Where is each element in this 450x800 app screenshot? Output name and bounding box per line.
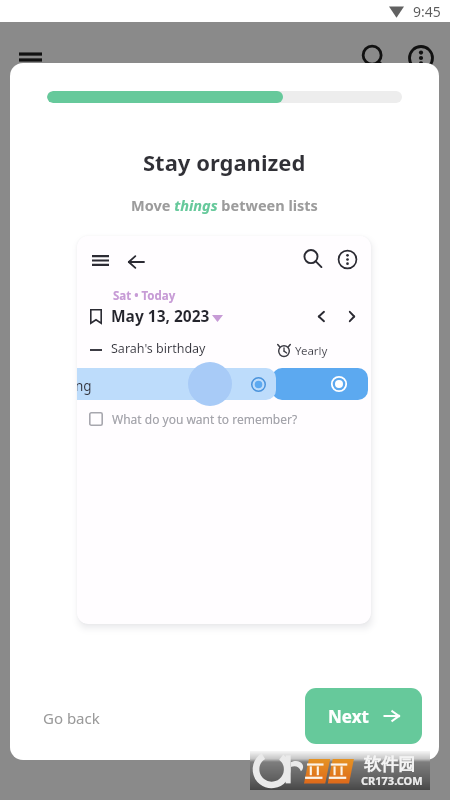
staticText: Go back xyxy=(43,708,100,728)
button[interactable]: More options xyxy=(331,243,363,275)
button[interactable]: Search xyxy=(360,43,390,73)
staticText: Next xyxy=(328,705,369,728)
staticText: 9:45 xyxy=(413,2,441,21)
staticText: Sat • Today xyxy=(113,288,176,304)
button[interactable]: Menu xyxy=(15,43,45,73)
button[interactable]: Next xyxy=(305,688,422,744)
button[interactable]: Menu xyxy=(84,244,116,276)
staticText: Stay organized xyxy=(143,147,306,177)
staticText: Yearly xyxy=(295,343,328,359)
button[interactable]: What do you want to remember? xyxy=(77,406,371,432)
staticText: CR173.COM xyxy=(361,773,423,788)
staticText: 软件园 xyxy=(364,754,415,775)
button[interactable]: Go back xyxy=(37,703,106,733)
staticText: Move things between lists xyxy=(131,195,318,215)
staticText: Sarah's birthday xyxy=(111,340,206,357)
button[interactable]: Next day xyxy=(337,301,367,331)
staticText: ng xyxy=(77,377,92,395)
staticText: What do you want to remember? xyxy=(112,411,298,427)
button[interactable]: Previous day xyxy=(306,301,336,331)
button[interactable]: More options xyxy=(406,43,436,73)
button[interactable]: Back xyxy=(120,246,152,278)
button[interactable]: Search xyxy=(296,242,328,274)
staticText: May 13, 2023 xyxy=(111,305,210,326)
